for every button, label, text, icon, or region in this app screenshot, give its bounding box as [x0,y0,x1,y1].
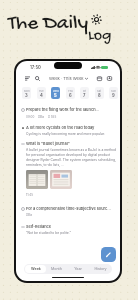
staticText: Mon [24,89,30,92]
button[interactable]: Week [25,265,46,273]
staticText: 09:00 [26,115,35,119]
staticText: 7 [83,93,86,98]
staticText: What is "Bullet journal" [26,141,70,146]
button[interactable]: Year [67,265,89,273]
staticText: #Biz [38,115,45,119]
button[interactable]: History [89,265,111,273]
button[interactable]: A lot more cyclists on the road today [19,125,117,136]
staticText: Month [51,267,62,271]
staticText: 11:45 [26,193,34,197]
button[interactable]: Sat [95,87,104,99]
staticText: History [94,267,107,271]
staticText: Thu [68,89,73,92]
staticText: Sat [97,89,102,92]
button[interactable]: New entry [101,247,116,262]
button[interactable]: Month [46,265,67,273]
staticText: 8 [98,93,101,98]
staticText: # 555 [48,115,57,119]
staticText: 5 [54,93,57,98]
staticText: Tue [39,89,44,92]
staticText: Fri [83,89,87,92]
staticText: 6 [69,93,72,98]
staticText: 17:50 [30,65,41,70]
button[interactable]: Journal photo [26,170,48,189]
staticText: Log [88,27,112,46]
button[interactable]: Filter [24,75,31,82]
button[interactable]: Profile [106,75,113,82]
button[interactable]: Fri [80,87,89,99]
staticText: A bullet journal (sometimes known as a B… [26,148,117,166]
button[interactable]: Prepare the filing work for the launch..… [19,107,117,119]
button[interactable]: Sun [109,87,118,99]
staticText: Cycling is really becoming more and more… [26,132,105,136]
staticText: A lot more cyclists on the road today [26,125,95,130]
button[interactable]: Thu [66,87,75,99]
staticText: Week · This Week [49,76,84,81]
staticText: 4 [40,93,43,98]
staticText: "Not be studied to be polite." [26,231,71,235]
staticText: 9 [112,93,115,98]
staticText: Prepare the filing work for the launch..… [26,107,100,112]
button[interactable]: Mon [22,87,31,99]
button[interactable]: Wed [51,87,60,99]
button[interactable]: Search [34,75,41,82]
button[interactable]: What is "Bullet journal" [19,141,117,197]
staticText: The Daily [8,12,89,37]
button[interactable]: Week · This Week [49,76,88,81]
staticText: Year [74,267,82,271]
button[interactable]: Calendar [96,75,103,82]
staticText: 3 [25,93,28,98]
staticText: For a comprehensive time-subjective sour… [26,206,112,211]
staticText: #Biz [26,213,33,217]
staticText: Self-Reliance [26,224,52,229]
button[interactable]: Self-Reliance [19,224,117,235]
staticText: Wed [53,89,59,92]
staticText: Week [31,267,41,271]
staticText: Sun [111,89,116,92]
button[interactable]: Tue [37,87,46,99]
button[interactable]: Journal photo [50,170,72,189]
button[interactable]: For a comprehensive time-subjective sour… [19,206,117,217]
